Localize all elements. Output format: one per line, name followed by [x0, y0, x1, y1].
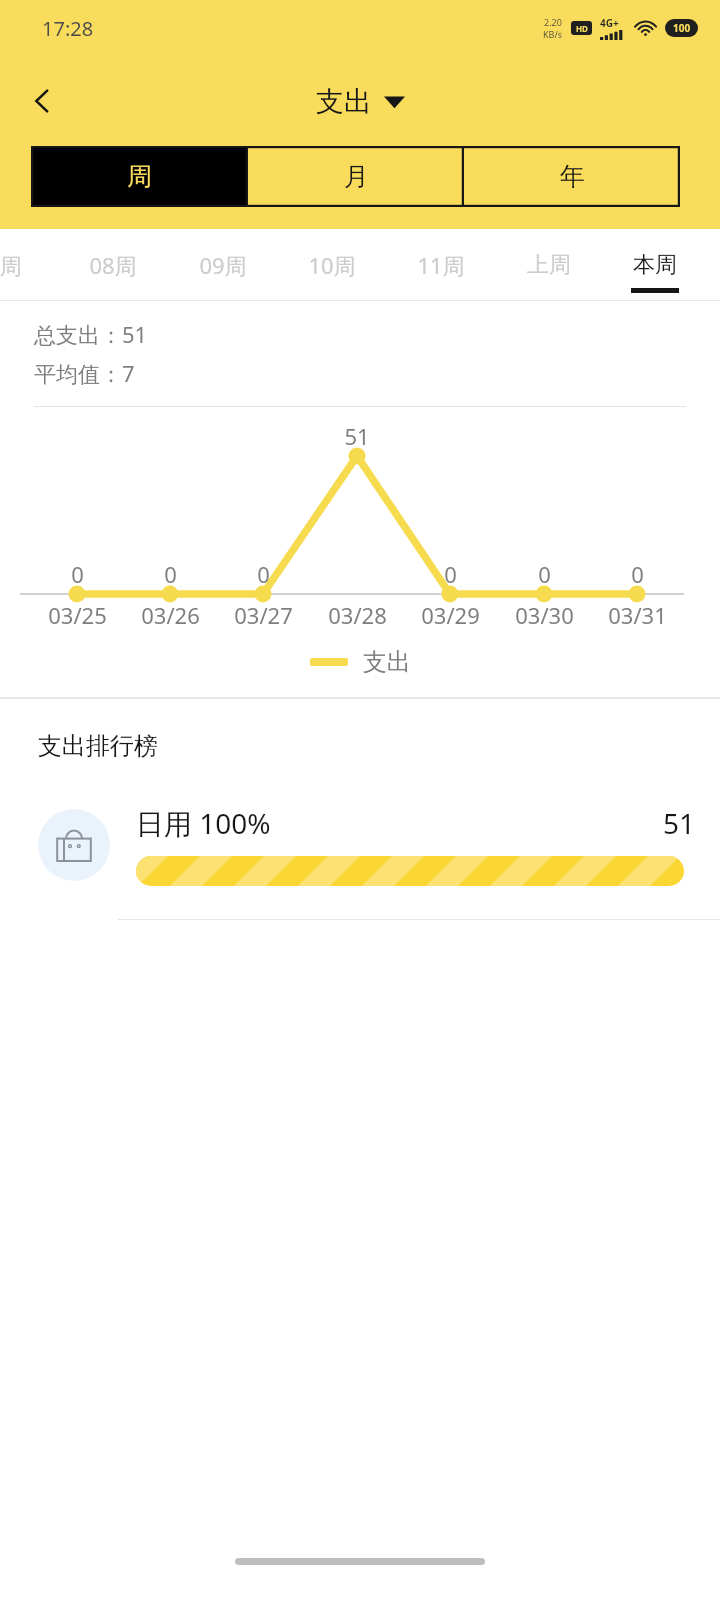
button[interactable]: 7周 — [0, 229, 52, 301]
staticText: 支出排行榜 — [38, 731, 158, 761]
staticText: 周 — [127, 161, 152, 192]
staticText: 17:28 — [42, 15, 94, 42]
button[interactable]: 11周 — [393, 229, 489, 301]
staticText: 0 — [631, 559, 644, 589]
staticText: 4G+ — [600, 16, 619, 30]
staticText: 0 — [164, 559, 177, 589]
staticText: 51 — [663, 804, 696, 842]
staticText: 2.20 — [544, 16, 562, 28]
button[interactable]: 08周 — [65, 229, 161, 301]
button[interactable]: 10周 — [284, 229, 380, 301]
button[interactable]: 日用 100% — [0, 797, 720, 893]
staticText: 03/28 — [328, 600, 387, 630]
staticText: 03/31 — [608, 600, 667, 630]
staticText: 总支出：51 — [34, 319, 148, 349]
staticText: 年 — [560, 161, 585, 192]
button[interactable]: 09周 — [175, 229, 271, 301]
staticText: 11周 — [417, 250, 465, 280]
staticText: 0 — [444, 559, 457, 589]
staticText: KB/s — [543, 28, 563, 40]
staticText: 03/26 — [141, 600, 200, 630]
button[interactable]: 本周 — [607, 229, 703, 301]
staticText: 7周 — [0, 250, 22, 280]
staticText: 100 — [673, 21, 691, 35]
staticText: 09周 — [199, 250, 247, 280]
button[interactable]: 月 — [248, 146, 464, 207]
staticText: 平均值：7 — [34, 358, 135, 388]
staticText: 03/27 — [234, 600, 293, 630]
staticText: HD — [576, 23, 588, 34]
staticText: 月 — [344, 161, 369, 192]
staticText: 上周 — [527, 251, 571, 279]
staticText: 支出 — [316, 84, 372, 119]
staticText: 0 — [538, 559, 551, 589]
staticText: 日用 100% — [136, 804, 271, 842]
staticText: 0 — [257, 559, 270, 589]
staticText: 03/29 — [421, 600, 480, 630]
button[interactable]: 年 — [464, 146, 680, 207]
staticText: 08周 — [89, 250, 137, 280]
button[interactable]: 上周 — [501, 229, 597, 301]
staticText: 0 — [71, 559, 84, 589]
button[interactable]: 周 — [31, 146, 248, 207]
button[interactable]: Back — [12, 71, 72, 131]
button[interactable]: 支出 — [306, 78, 415, 125]
staticText: 51 — [344, 421, 370, 451]
staticText: 支出 — [363, 647, 411, 677]
staticText: 03/25 — [48, 600, 107, 630]
staticText: 10周 — [308, 250, 356, 280]
staticText: 03/30 — [515, 600, 574, 630]
staticText: 本周 — [633, 251, 677, 279]
